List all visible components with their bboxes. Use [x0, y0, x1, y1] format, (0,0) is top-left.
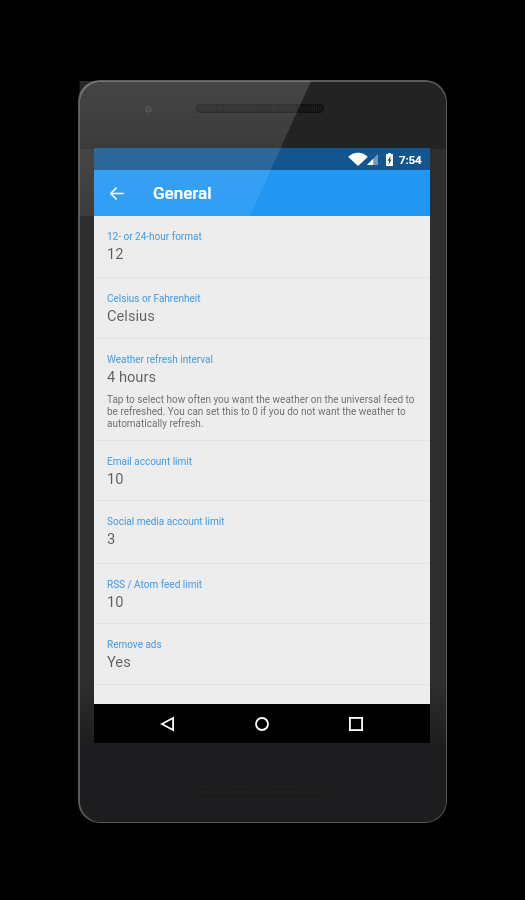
staticText: General [153, 183, 212, 203]
staticText: 4 hours [107, 368, 157, 385]
staticText: Email account limit [107, 456, 192, 468]
staticText: 7:54 [399, 153, 422, 166]
staticText: 3 [107, 530, 116, 547]
button[interactable]: RSS / Atom feed limit [94, 564, 430, 624]
staticText: Remove ads [107, 639, 162, 651]
button[interactable]: Social media account limit [94, 501, 430, 564]
staticText: 12 [107, 245, 124, 262]
staticText: 10 [107, 470, 124, 487]
button[interactable]: 12- or 24-hour format [94, 216, 430, 278]
button[interactable]: Email account limit [94, 441, 430, 501]
button[interactable]: Back [151, 707, 184, 740]
button[interactable]: Recent apps [339, 707, 372, 740]
button[interactable]: Remove ads [94, 624, 430, 685]
button[interactable]: Home [245, 707, 278, 740]
staticText: Weather refresh interval [107, 354, 213, 366]
staticText: RSS / Atom feed limit [107, 579, 203, 591]
staticText: Celsius [107, 307, 155, 324]
staticText: 12- or 24-hour format [107, 231, 202, 243]
staticText: Yes [107, 653, 131, 670]
button[interactable]: Weather refresh interval [94, 339, 430, 441]
button[interactable]: Navigate up [101, 177, 133, 209]
staticText: Celsius or Fahrenheit [107, 293, 201, 305]
staticText: Social media account limit [107, 516, 225, 528]
staticText: 10 [107, 593, 124, 610]
button[interactable]: Celsius or Fahrenheit [94, 278, 430, 339]
staticText: Tap to select how often you want the wea… [107, 394, 417, 430]
